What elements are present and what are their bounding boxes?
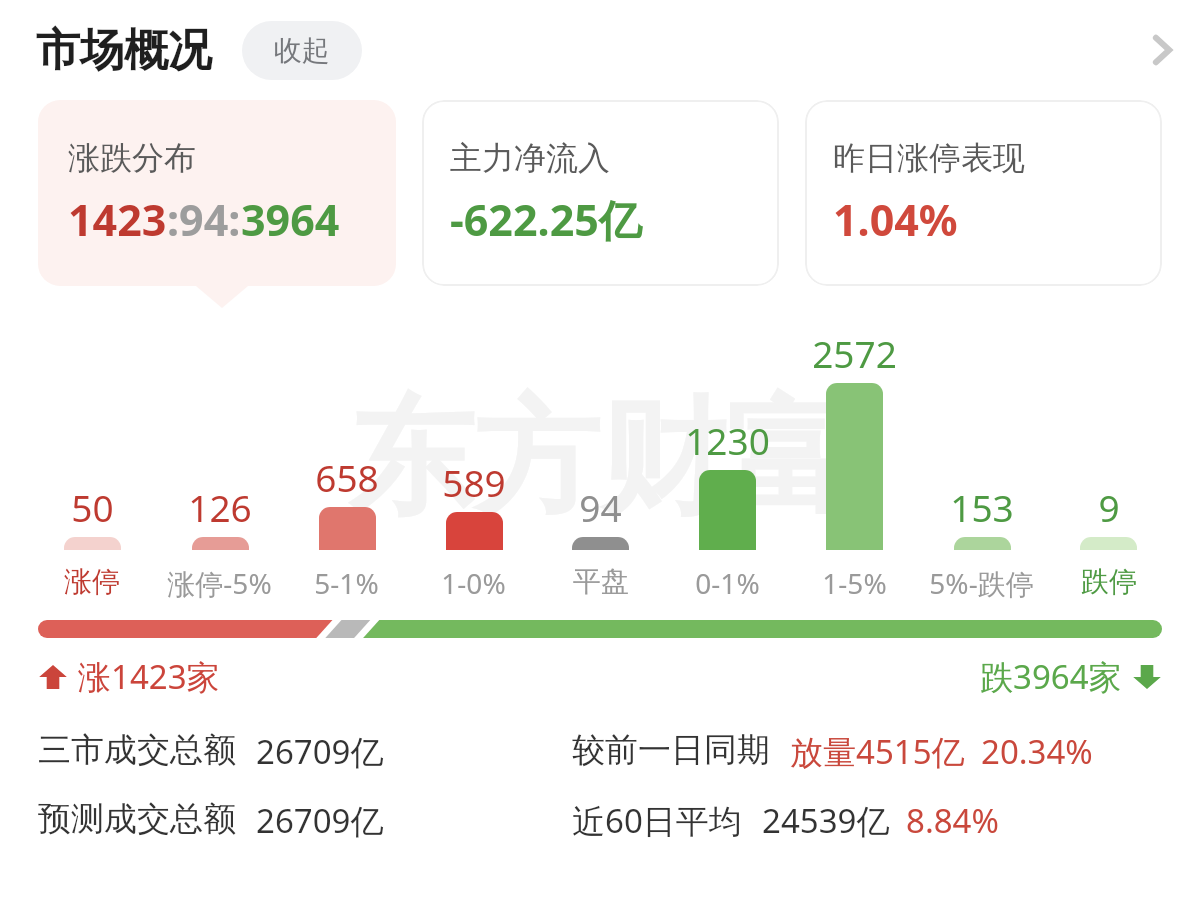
staticText: -622.25亿 — [450, 190, 642, 249]
staticText: 126 — [188, 482, 252, 532]
staticText: 预测成交总额 — [38, 798, 236, 840]
staticText: 153 — [950, 482, 1014, 532]
staticText: 2572 — [812, 328, 897, 378]
staticText: 跌3964家 — [980, 654, 1122, 699]
button[interactable]: 昨日涨停表现 — [805, 100, 1162, 286]
staticText: 5-1% — [314, 564, 379, 602]
staticText: 589 — [442, 457, 506, 507]
staticText: 昨日涨停表现 — [833, 138, 1025, 178]
button[interactable]: 涨跌分布 — [38, 100, 396, 286]
staticText: 市场概况 — [36, 23, 212, 78]
staticText: 三市成交总额 — [38, 729, 236, 771]
staticText: 涨停-5% — [167, 564, 272, 602]
staticText: 放量4515亿 — [790, 729, 965, 774]
staticText: 跌停 — [1081, 564, 1137, 599]
button[interactable]: 展开详情 — [1124, 12, 1200, 88]
staticText: 较前一日同期 — [572, 729, 770, 771]
staticText: 26709亿 — [256, 729, 384, 774]
staticText: 涨跌分布 — [68, 138, 196, 178]
staticText: 20.34% — [981, 729, 1093, 774]
staticText: 平盘 — [573, 564, 629, 599]
staticText: 24539亿 — [762, 798, 890, 843]
staticText: 9 — [1098, 482, 1120, 532]
staticText: 1-0% — [441, 564, 506, 602]
staticText: 3964 — [241, 190, 340, 249]
staticText: 5%-跌停 — [929, 564, 1034, 602]
staticText: 1230 — [685, 415, 770, 465]
button[interactable]: 收起 — [242, 21, 362, 80]
staticText: 近60日平均 — [572, 798, 742, 843]
staticText: 50 — [71, 482, 114, 532]
staticText: 东方财富 — [348, 380, 852, 539]
staticText: 1423 — [68, 190, 167, 249]
staticText: :94: — [167, 190, 241, 249]
staticText: 94 — [579, 482, 622, 532]
staticText: 主力净流入 — [450, 138, 610, 178]
staticText: 收起 — [274, 33, 330, 68]
staticText: 1.04% — [833, 190, 958, 249]
staticText: 658 — [315, 452, 379, 502]
staticText: 26709亿 — [256, 798, 384, 843]
staticText: 8.84% — [906, 798, 999, 843]
staticText: 0-1% — [695, 564, 760, 602]
staticText: 涨1423家 — [78, 654, 220, 699]
staticText: 涨停 — [64, 564, 120, 599]
staticText: 1-5% — [822, 564, 887, 602]
button[interactable]: 主力净流入 — [422, 100, 779, 286]
